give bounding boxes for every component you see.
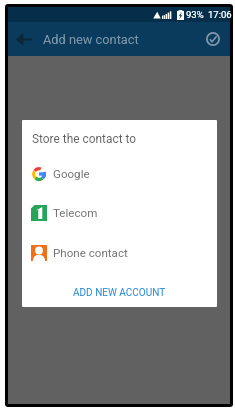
staticText: Google [53, 167, 90, 181]
button[interactable]: Back [12, 27, 36, 51]
button[interactable]: Telecom [22, 200, 217, 225]
staticText: ADD NEW ACCOUNT [73, 287, 166, 299]
button[interactable]: Done [201, 27, 225, 51]
button[interactable]: Google [22, 161, 217, 186]
staticText: Telecom [53, 206, 98, 220]
staticText: 93% [186, 9, 204, 20]
staticText: Store the contact to [32, 132, 137, 146]
staticText: Phone contact [53, 246, 128, 260]
staticText: 17:06 [208, 9, 232, 20]
button[interactable]: Phone contact [22, 240, 217, 265]
button[interactable]: ADD NEW ACCOUNT [63, 280, 176, 305]
staticText: Add new contact [43, 32, 139, 47]
